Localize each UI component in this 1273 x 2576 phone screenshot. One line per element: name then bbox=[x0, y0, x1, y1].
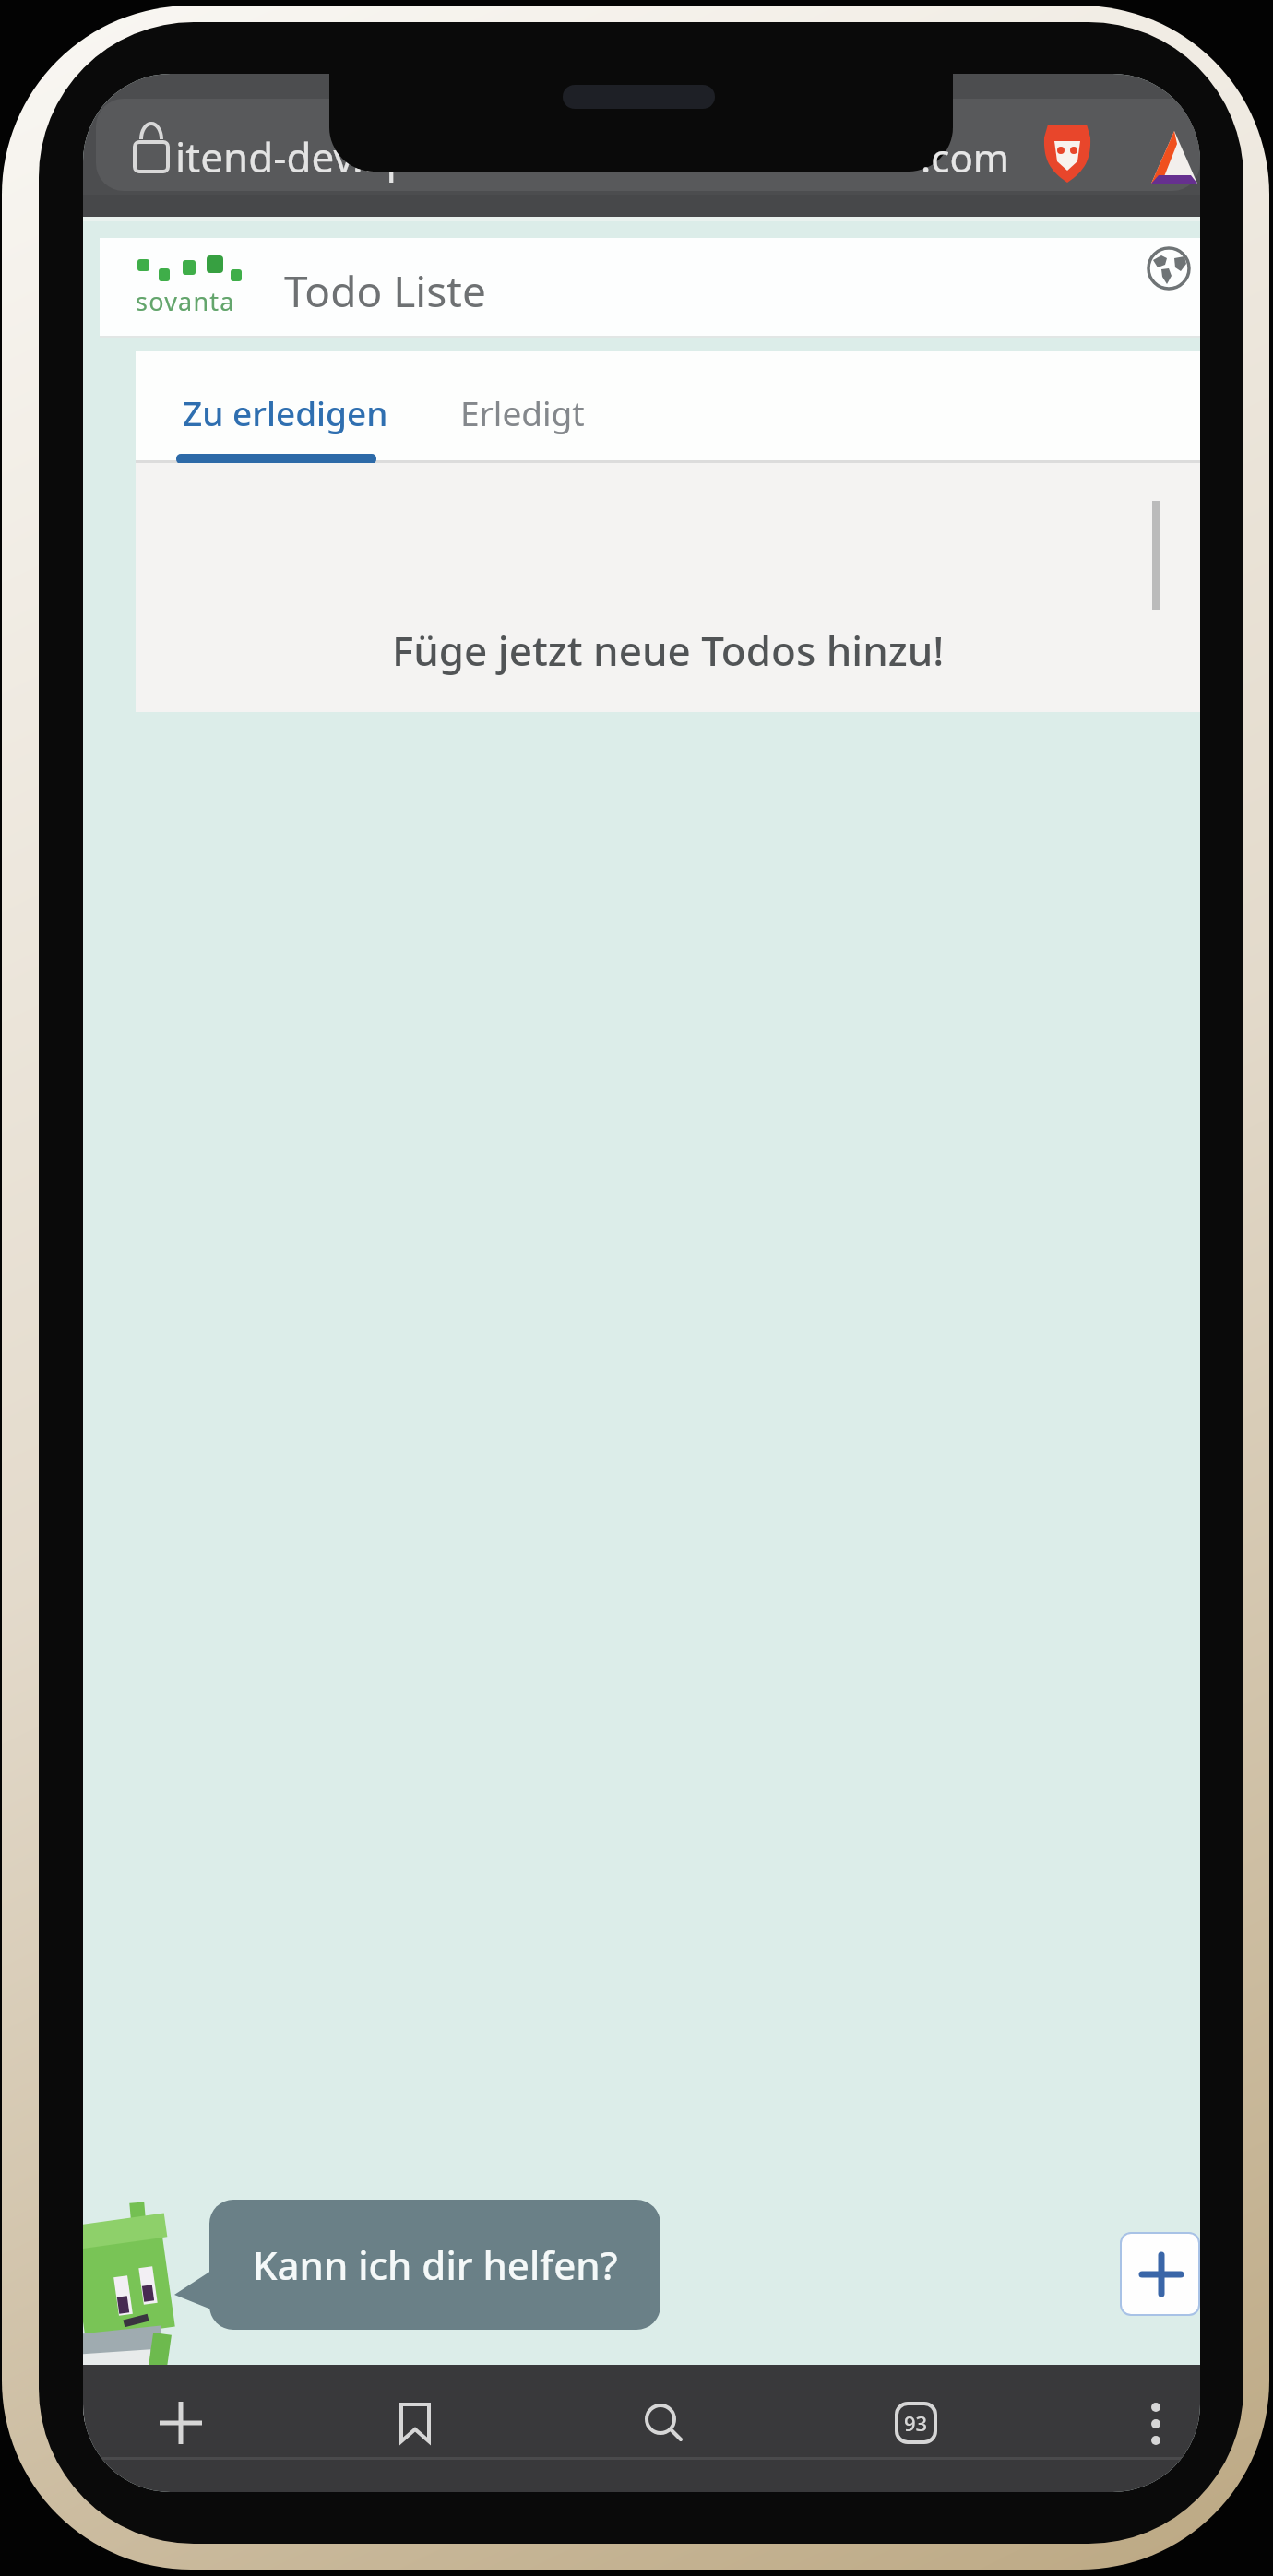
button[interactable]: Kann ich dir helfen? bbox=[209, 2200, 660, 2330]
button[interactable] bbox=[1120, 2232, 1200, 2316]
button[interactable]: Erledigt bbox=[460, 389, 585, 435]
button[interactable] bbox=[644, 2403, 684, 2443]
staticText: Kann ich dir helfen? bbox=[253, 2238, 618, 2291]
button[interactable] bbox=[1148, 2400, 1163, 2448]
button[interactable]: Zu erledigen bbox=[183, 389, 388, 435]
staticText: .com bbox=[921, 131, 1010, 184]
staticText: Todo Liste bbox=[284, 262, 486, 320]
staticText: itend-dev.ap bbox=[175, 129, 411, 184]
button[interactable] bbox=[399, 2403, 431, 2443]
staticText: 93 bbox=[904, 2409, 928, 2437]
button[interactable] bbox=[159, 2401, 203, 2445]
button[interactable]: 93 bbox=[895, 2402, 937, 2444]
button[interactable] bbox=[1146, 245, 1192, 291]
staticText: Füge jetzt neue Todos hinzu! bbox=[392, 623, 945, 678]
staticText: sovanta bbox=[136, 284, 235, 318]
